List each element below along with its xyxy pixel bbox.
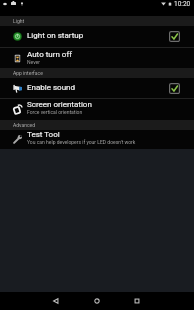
button[interactable]: Home <box>88 292 106 310</box>
button[interactable]: Enable sound <box>0 78 194 98</box>
staticText: Force vertical orientation <box>27 109 83 115</box>
button[interactable]: Light on startup <box>0 26 194 47</box>
staticText: Never <box>27 59 40 65</box>
staticText: You can help developers if your LED does… <box>27 139 136 145</box>
staticText: Screen orientation <box>27 100 92 109</box>
button[interactable]: Auto turn off <box>0 48 194 68</box>
staticText: Enable sound <box>27 83 76 92</box>
staticText: App interface <box>13 70 43 76</box>
button[interactable]: Back <box>47 292 65 310</box>
button[interactable]: Test Tool <box>0 130 194 149</box>
button[interactable]: Screen orientation <box>0 99 194 120</box>
button[interactable]: Recents <box>128 292 146 310</box>
staticText: Auto turn off <box>27 50 72 59</box>
staticText: Advanced <box>13 122 36 128</box>
staticText: Test Tool <box>27 130 60 139</box>
staticText: 10:20 <box>174 0 191 7</box>
button[interactable]: Toggle <box>169 31 180 42</box>
button[interactable]: Toggle <box>169 83 180 94</box>
staticText: Light <box>13 18 25 24</box>
staticText: Light on startup <box>27 31 84 40</box>
